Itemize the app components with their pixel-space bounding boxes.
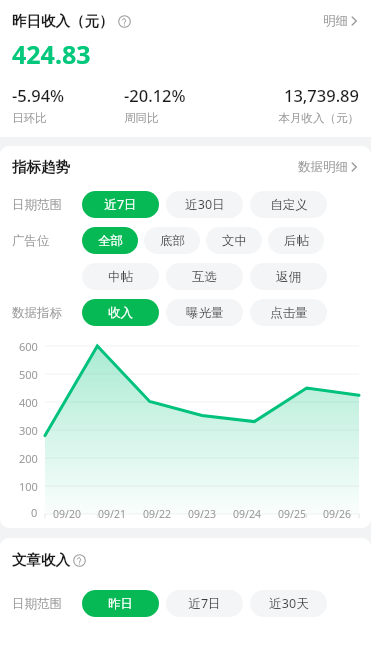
button[interactable]: 近30日 (166, 191, 243, 218)
button[interactable]: 返佣 (250, 263, 327, 290)
button[interactable]: 近7日 (82, 191, 159, 218)
staticText: 09/20 (53, 507, 81, 521)
staticText: 文章收入 (12, 551, 70, 569)
staticText: -5.94% (12, 84, 124, 106)
staticText: 点击量 (270, 305, 308, 321)
staticText: 数据指标 (12, 305, 62, 321)
button[interactable]: 明细 (321, 10, 359, 32)
staticText: 指标趋势 (12, 158, 70, 176)
staticText: 日期范围 (12, 197, 62, 213)
staticText: 300 (19, 423, 38, 438)
staticText: 近7日 (104, 196, 137, 213)
staticText: 昨日 (108, 596, 133, 612)
staticText: 本月收入（元） (236, 111, 359, 125)
button[interactable]: 中帖 (82, 263, 159, 290)
staticText: 200 (19, 451, 38, 466)
button[interactable]: 昨日 (82, 590, 159, 617)
staticText: 424.83 (12, 37, 91, 71)
button[interactable]: 数据明细 (296, 156, 359, 178)
staticText: 09/23 (188, 507, 216, 521)
staticText: 明细 (323, 13, 348, 29)
staticText: 09/24 (233, 507, 261, 521)
staticText: 周同比 (124, 111, 236, 125)
staticText: 13,739.89 (236, 84, 359, 106)
staticText: 返佣 (276, 269, 301, 285)
button[interactable]: 底部 (144, 227, 200, 254)
staticText: 09/22 (143, 507, 171, 521)
button[interactable]: 近30天 (250, 590, 327, 617)
staticText: 500 (19, 367, 38, 382)
staticText: 文中 (222, 233, 247, 249)
staticText: 昨日收入（元） (12, 12, 114, 30)
staticText: 09/21 (98, 507, 126, 521)
button[interactable]: 全部 (82, 227, 138, 254)
staticText: 互选 (192, 269, 217, 285)
staticText: 近30日 (185, 196, 225, 213)
staticText: 100 (19, 479, 38, 494)
staticText: 全部 (98, 233, 123, 249)
button[interactable]: 文中 (206, 227, 262, 254)
staticText: 收入 (108, 305, 133, 321)
staticText: 09/26 (323, 507, 351, 521)
staticText: 09/25 (278, 507, 306, 521)
staticText: 广告位 (12, 233, 50, 249)
staticText: 中帖 (108, 269, 133, 285)
staticText: 日环比 (12, 111, 124, 125)
button[interactable]: 曝光量 (166, 299, 243, 326)
button[interactable]: 收入 (82, 299, 159, 326)
button[interactable]: 自定义 (250, 191, 327, 218)
staticText: 底部 (160, 233, 185, 249)
staticText: -20.12% (124, 84, 236, 106)
staticText: 近30天 (269, 595, 309, 612)
button[interactable]: 后帖 (268, 227, 324, 254)
button[interactable]: 互选 (166, 263, 243, 290)
staticText: 自定义 (270, 197, 308, 213)
button[interactable]: 点击量 (250, 299, 327, 326)
staticText: 后帖 (284, 233, 309, 249)
button[interactable]: 近7日 (166, 590, 243, 617)
staticText: 日期范围 (12, 596, 62, 612)
staticText: 近7日 (188, 595, 221, 612)
staticText: 400 (19, 395, 38, 410)
staticText: 曝光量 (186, 305, 224, 321)
staticText: 0 (31, 505, 38, 520)
staticText: 数据明细 (298, 159, 348, 175)
staticText: 600 (19, 339, 38, 354)
